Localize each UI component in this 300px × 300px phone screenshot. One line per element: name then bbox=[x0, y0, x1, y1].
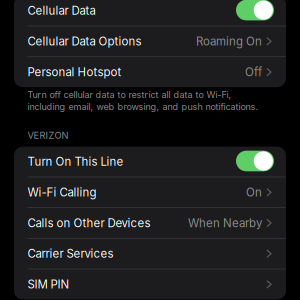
staticText: Wi-Fi Calling bbox=[27, 185, 96, 199]
button[interactable]: Calls on Other Devices bbox=[14, 208, 286, 238]
button[interactable]: Turn On This Line bbox=[14, 147, 286, 177]
staticText: When Nearby bbox=[188, 216, 262, 230]
button[interactable]: Personal Hotspot bbox=[14, 57, 286, 87]
button[interactable]: Cellular Data bbox=[14, 0, 286, 26]
staticText: Personal Hotspot bbox=[27, 65, 121, 79]
staticText: Cellular Data bbox=[27, 4, 95, 18]
staticText: SIM PIN bbox=[27, 277, 69, 291]
button[interactable]: Wi-Fi Calling bbox=[14, 177, 286, 207]
staticText: Calls on Other Devices bbox=[27, 216, 150, 230]
button[interactable]: Cellular Data Options bbox=[14, 26, 286, 56]
button[interactable]: SIM PIN bbox=[14, 269, 286, 299]
button[interactable]: Carrier Services bbox=[14, 239, 286, 269]
staticText: On bbox=[246, 185, 262, 199]
staticText: Off bbox=[245, 65, 262, 79]
staticText: Carrier Services bbox=[27, 247, 113, 261]
staticText: VERIZON bbox=[27, 130, 68, 141]
staticText: including email, web browsing, and push … bbox=[27, 101, 258, 112]
staticText: Turn On This Line bbox=[27, 155, 123, 169]
staticText: Roaming On bbox=[196, 34, 262, 48]
staticText: Cellular Data Options bbox=[27, 34, 141, 48]
staticText: Turn off cellular data to restrict all d… bbox=[27, 89, 231, 100]
